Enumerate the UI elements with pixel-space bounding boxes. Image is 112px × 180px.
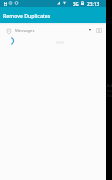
staticText: Messages <box>15 28 35 34</box>
staticText: 3G <box>73 1 79 7</box>
staticText: Ad <box>107 83 112 88</box>
button[interactable]: Pause <box>96 28 102 33</box>
staticText: Remove Duplicates <box>3 12 51 19</box>
staticText: Go <box>107 93 112 98</box>
staticText: by <box>107 88 112 93</box>
button[interactable]: Expand <box>87 27 92 32</box>
staticText: 23:13 <box>87 1 100 8</box>
staticText: 3558 <box>56 40 64 45</box>
button[interactable]: Messages <box>0 25 106 37</box>
